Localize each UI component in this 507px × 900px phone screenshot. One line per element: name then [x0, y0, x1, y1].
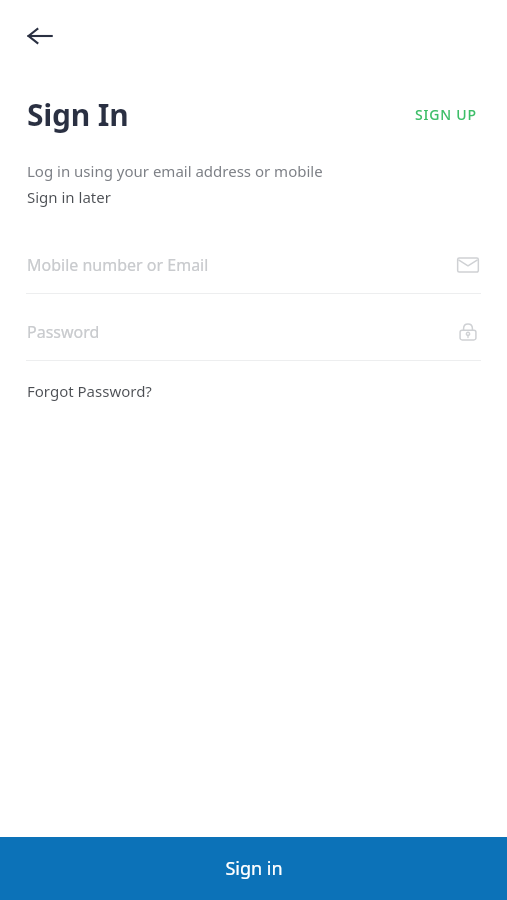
staticText: Mobile number or Email — [27, 254, 209, 276]
staticText: Password — [27, 321, 100, 343]
button[interactable]: Forgot Password? — [27, 381, 152, 401]
button[interactable]: Sign in — [0, 837, 507, 900]
button[interactable]: SIGN UP — [409, 99, 483, 130]
other: Password — [455, 319, 481, 345]
button[interactable]: Back — [14, 10, 66, 62]
staticText: Forgot Password? — [27, 381, 152, 401]
staticText: Sign in — [225, 856, 283, 881]
other: Email — [455, 252, 481, 278]
staticText: Log in using your email address or mobil… — [27, 161, 323, 181]
staticText: Sign In — [27, 94, 129, 135]
button[interactable]: Password — [0, 319, 507, 361]
staticText: Sign in later — [27, 187, 111, 207]
staticText: SIGN UP — [415, 105, 477, 124]
button[interactable]: Sign in later — [27, 187, 111, 207]
button[interactable]: Mobile number or Email — [0, 252, 507, 294]
